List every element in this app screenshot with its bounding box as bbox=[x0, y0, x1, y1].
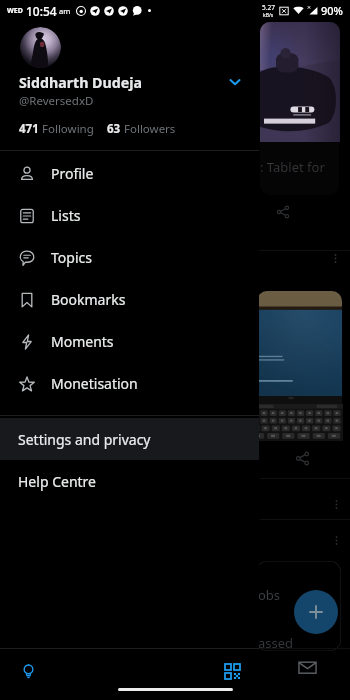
staticText: 63 bbox=[107, 121, 121, 137]
staticText: @ReversedxD bbox=[19, 93, 94, 109]
button[interactable]: Compose tweet bbox=[294, 590, 338, 634]
staticText: Following bbox=[42, 121, 94, 137]
staticText: WED bbox=[7, 6, 23, 16]
button[interactable]: Bookmarks bbox=[0, 278, 259, 320]
staticText: 10:54 bbox=[26, 3, 57, 19]
button[interactable]: Settings and privacy bbox=[0, 418, 259, 460]
button[interactable]: Messages bbox=[294, 654, 320, 680]
staticText: kB/s bbox=[263, 12, 274, 19]
staticText: Profile bbox=[51, 164, 94, 183]
staticText: Help Centre bbox=[18, 472, 96, 491]
staticText: 90% bbox=[321, 3, 343, 18]
staticText: : Tablet for bbox=[260, 158, 325, 176]
staticText: 5.27 bbox=[262, 3, 275, 12]
staticText: am bbox=[59, 6, 71, 16]
staticText: Followers bbox=[124, 121, 176, 137]
button[interactable]: Lists bbox=[0, 194, 259, 236]
button[interactable]: Moments bbox=[0, 320, 259, 362]
button[interactable]: QR code bbox=[219, 658, 245, 684]
button[interactable]: Expand accounts bbox=[225, 72, 245, 92]
button[interactable]: Dark mode bbox=[15, 658, 41, 684]
staticText: Monetisation bbox=[51, 374, 138, 393]
button[interactable]: Topics bbox=[0, 236, 259, 278]
button[interactable]: 471 bbox=[19, 121, 94, 137]
button[interactable]: 63 bbox=[107, 121, 176, 137]
staticText: assed bbox=[258, 634, 294, 652]
button[interactable]: Help Centre bbox=[0, 460, 259, 502]
staticText: obs bbox=[258, 586, 281, 604]
staticText: Siddharth Dudeja bbox=[19, 73, 142, 92]
button[interactable]: Monetisation bbox=[0, 362, 259, 404]
staticText: Settings and privacy bbox=[18, 430, 151, 449]
staticText: Bookmarks bbox=[51, 290, 126, 309]
staticText: Lists bbox=[51, 206, 81, 225]
button[interactable]: Profile bbox=[0, 152, 259, 194]
button[interactable]: Profile picture bbox=[20, 27, 61, 68]
staticText: Moments bbox=[51, 332, 114, 351]
staticText: 471 bbox=[19, 121, 39, 137]
staticText: Topics bbox=[51, 248, 92, 267]
